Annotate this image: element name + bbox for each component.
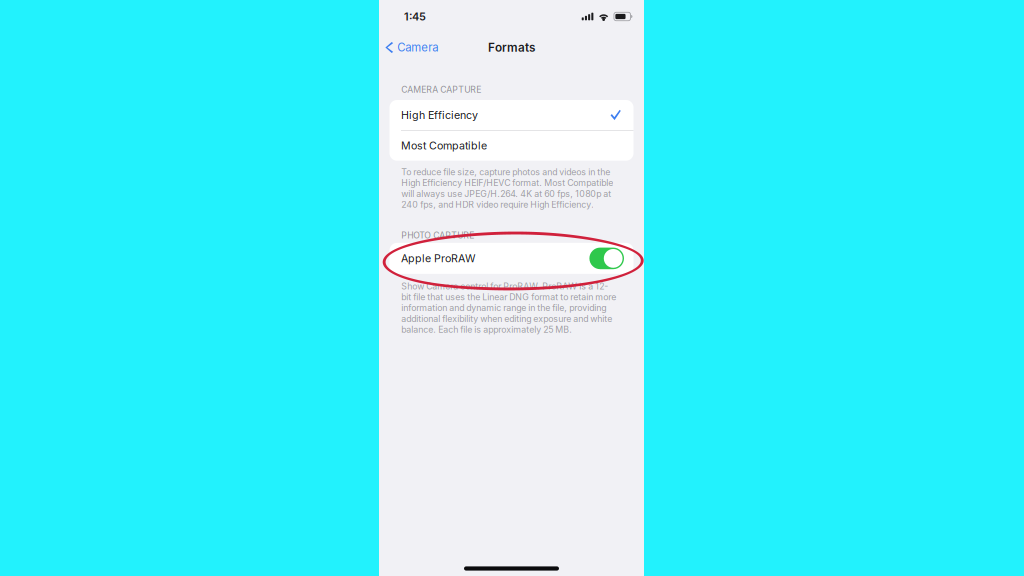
staticText: PHOTO CAPTURE xyxy=(401,230,474,241)
staticText: Formats xyxy=(488,40,535,55)
button[interactable]: Most Compatible xyxy=(389,131,633,161)
button[interactable]: High Efficiency xyxy=(389,100,633,130)
staticText: Apple ProRAW xyxy=(401,252,476,265)
staticText: Show Camera control for ProRAW. ProRAW i… xyxy=(401,281,616,335)
staticText: To reduce file size, capture photos and … xyxy=(401,167,613,210)
button[interactable]: Camera xyxy=(379,36,444,59)
staticText: Camera xyxy=(397,41,438,54)
staticText: 1:45 xyxy=(404,10,426,23)
button[interactable]: Apple ProRAW xyxy=(389,243,633,274)
staticText: CAMERA CAPTURE xyxy=(401,84,481,95)
staticText: Most Compatible xyxy=(401,139,487,152)
staticText: High Efficiency xyxy=(401,108,478,121)
